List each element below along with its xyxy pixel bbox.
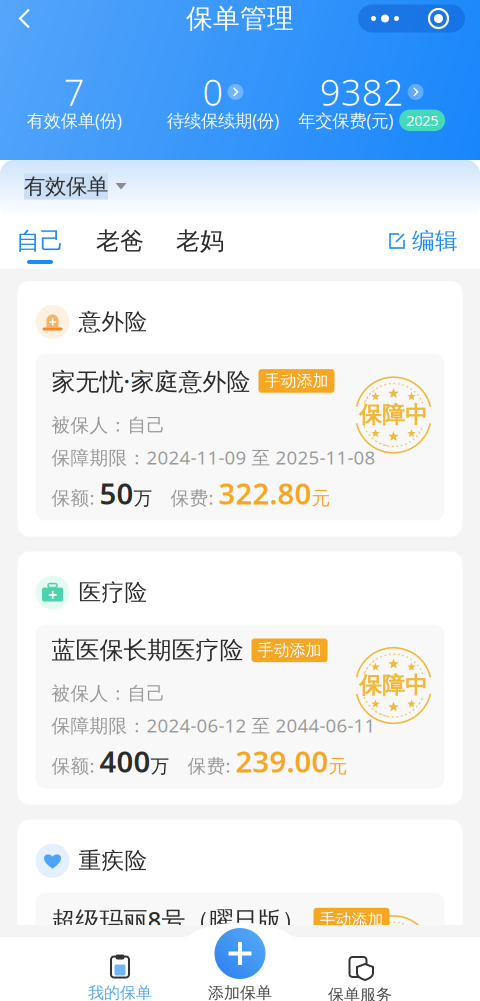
staticText: 400 [99,742,150,781]
staticText: 有效保单 [24,173,108,200]
staticText: 手动添加 [319,910,383,929]
staticText: 元 [328,755,347,778]
staticText: 2025 [406,111,438,130]
staticText: 7 [64,68,85,116]
staticText: + [48,312,56,331]
staticText: 50 [99,474,133,513]
button[interactable]: 添加保单 [180,925,300,1001]
staticText: 老爸 [96,226,144,256]
staticText: 9382 [320,68,404,116]
staticText: 保费: [169,753,235,778]
staticText: 有效保单(份) [27,109,122,132]
staticText: 0 [202,68,223,116]
staticText: 待续保续期(份) [167,109,279,132]
staticText: 手动添加 [264,371,328,391]
staticText: 万 [150,755,169,778]
button[interactable]: 有效保单 [0,160,480,213]
button[interactable]: 老妈 [160,213,240,269]
staticText: 保障中 [359,672,428,699]
staticText: 蓝医保长期医疗险 [51,635,243,665]
button[interactable]: 自己 [0,213,80,269]
button[interactable]: 我的保单 [60,925,180,1001]
staticText: 意外险 [78,308,147,336]
staticText: 保额: [51,753,99,778]
staticText: 元 [311,487,330,510]
staticText: 保单服务 [328,985,392,1001]
button[interactable]: 返回 [0,0,50,37]
staticText: 保费: [152,485,218,510]
staticText: 家无忧·家庭意外险 [51,365,250,397]
staticText: 被保人：自己 [51,682,165,705]
staticText: 322.80 [218,474,311,513]
staticText: 老妈 [176,226,224,256]
staticText: 年交保费(元) [298,109,393,132]
staticText: 编辑 [412,227,458,255]
staticText: 保障期限：2024-03-01 至 2074-03-01 [51,983,375,1001]
staticText: 被保人：自己 [51,953,165,975]
staticText: 医疗险 [78,579,147,606]
staticText: 保障期限：2024-11-09 至 2025-11-08 [51,445,375,470]
staticText: 保额: [51,485,99,510]
staticText: 保单管理 [186,2,294,35]
staticText: 被保人：自己 [51,414,165,437]
staticText: 自己 [16,226,64,256]
staticText: 添加保单 [208,983,272,1001]
staticText: 手动添加 [257,640,321,660]
staticText: 保障期限：2024-06-12 至 2044-06-11 [51,713,375,738]
staticText: 重疾险 [78,847,147,875]
staticText: 超级玛丽8号（曜日版） [51,904,305,936]
staticText: 保障中 [359,401,428,429]
button[interactable]: 保单服务 [300,925,420,1001]
staticText: 我的保单 [88,983,152,1001]
staticText: 239.00 [235,742,328,781]
button[interactable]: 编辑 [388,213,480,269]
button[interactable]: 添加保单 [214,928,265,979]
staticText: + [48,584,57,605]
button[interactable]: 老爸 [80,213,160,269]
staticText: 万 [133,487,152,510]
staticText: 保障中 [359,940,428,968]
